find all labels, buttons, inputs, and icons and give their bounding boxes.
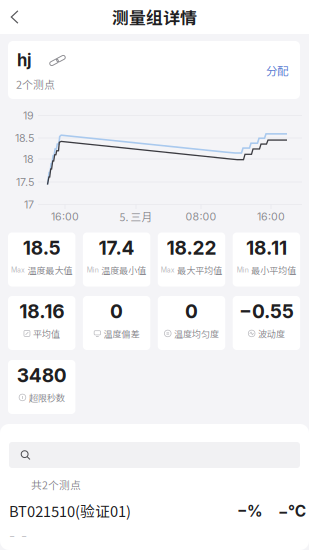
staticText: 18.11 [246,236,287,259]
staticText: −℃ [278,502,306,521]
staticText: 平均值 [33,327,60,340]
staticText: 18.5 [15,131,34,144]
staticText: 18.5 [23,236,61,259]
staticText: 温度最小值 [101,263,146,276]
staticText: 温度最大值 [27,263,72,276]
staticText: 0 [110,300,123,323]
staticText: Min [87,266,99,274]
staticText: 2个测点 [16,76,55,92]
staticText: 温度均匀度 [174,327,219,340]
button[interactable]: Back [0,0,31,34]
button[interactable]: 18.11 [233,232,300,286]
staticText: Max [11,266,25,274]
staticText: − − [9,530,27,541]
staticText: hj [17,50,32,70]
staticText: 17.4 [99,236,135,259]
staticText: Min [237,266,249,274]
staticText: 共2个测点 [31,477,81,492]
staticText: 19 [23,109,34,122]
button[interactable]: 18.5 [8,232,75,286]
staticText: 18.22 [166,236,216,259]
staticText: 17.5 [16,175,34,188]
staticText: 16:00 [51,210,79,223]
button[interactable]: 3480 [8,360,75,414]
staticText: −0.55 [239,300,294,323]
staticText: −% [237,502,263,521]
staticText: 3480 [17,364,67,387]
staticText: 0 [185,300,198,323]
staticText: 5. 三月 [119,209,152,224]
staticText: 08:00 [185,210,216,223]
button[interactable]: 17.4 [83,232,150,286]
staticText: Max [161,266,175,274]
button[interactable]: 分配 [261,57,293,84]
staticText: 波动度 [258,327,285,340]
button[interactable]: 0 [83,296,150,350]
staticText: 最小平均值 [251,263,296,276]
button[interactable]: −0.55 [233,296,300,350]
staticText: 测量组详情 [112,5,197,29]
button[interactable]: 18.22 [158,232,225,286]
staticText: 温度偏差 [104,327,140,340]
staticText: 17 [24,198,34,211]
button[interactable]: BT021510(验证01) [0,496,309,526]
staticText: 16:00 [257,210,285,223]
staticText: 最大平均值 [177,263,222,276]
staticText: 分配 [266,62,288,79]
button[interactable]: 18.16 [8,296,75,350]
staticText: 超限秒数 [29,391,65,404]
staticText: 18 [23,152,34,165]
button[interactable]: 0 [158,296,225,350]
staticText: 18.16 [19,300,64,323]
staticText: BT021510(验证01) [9,500,131,521]
